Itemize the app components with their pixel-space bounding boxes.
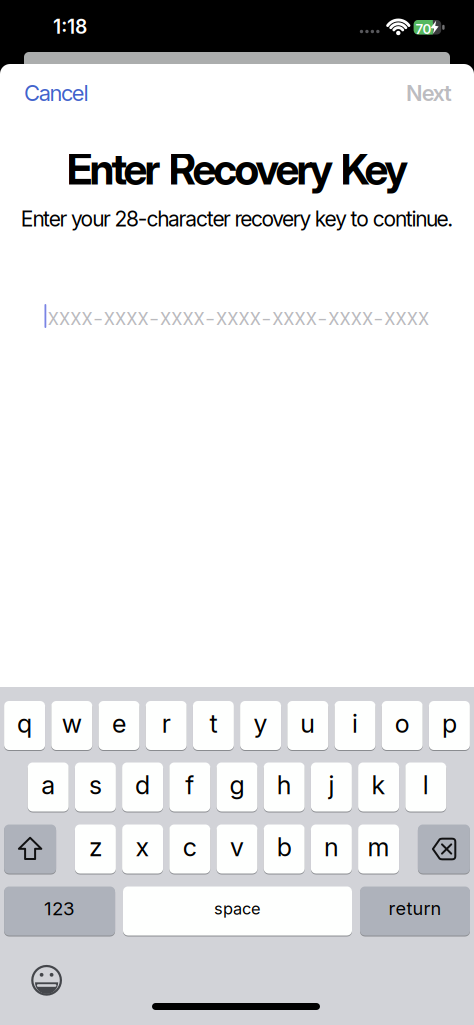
- button[interactable]: Emoji: [23, 956, 71, 1004]
- button[interactable]: Shift: [4, 824, 56, 874]
- button[interactable]: a: [28, 762, 69, 812]
- button[interactable]: r: [146, 700, 187, 750]
- staticText: XXXX-XXXX-XXXX-XXXX-XXXX-XXXX-XXXX: [47, 305, 429, 330]
- staticText: b: [277, 832, 292, 862]
- staticText: e: [112, 708, 126, 739]
- button[interactable]: e: [98, 700, 139, 750]
- staticText: return: [388, 897, 441, 919]
- button[interactable]: p: [429, 700, 470, 750]
- staticText: v: [230, 832, 244, 862]
- button[interactable]: j: [311, 762, 352, 812]
- staticText: Enter your 28-character recovery key to …: [21, 206, 453, 231]
- button[interactable]: m: [358, 824, 399, 874]
- staticText: space: [214, 899, 261, 918]
- button[interactable]: Next: [406, 80, 452, 106]
- staticText: w: [62, 708, 82, 739]
- staticText: Key: [340, 143, 407, 195]
- button[interactable]: l: [405, 762, 446, 812]
- staticText: q: [17, 708, 32, 739]
- staticText: o: [395, 708, 410, 739]
- staticText: r: [162, 708, 171, 739]
- staticText: g: [229, 770, 244, 800]
- staticText: d: [135, 770, 150, 800]
- staticText: Cancel: [24, 80, 88, 106]
- button[interactable]: i: [334, 700, 375, 750]
- staticText: c: [183, 832, 197, 862]
- staticText: h: [277, 770, 292, 800]
- button[interactable]: Delete: [418, 824, 470, 874]
- button[interactable]: o: [382, 700, 423, 750]
- staticText: s: [89, 770, 102, 800]
- button[interactable]: t: [193, 700, 234, 750]
- staticText: Enter: [66, 143, 160, 195]
- button[interactable]: z: [75, 824, 116, 874]
- button[interactable]: v: [216, 824, 257, 874]
- button[interactable]: x: [122, 824, 163, 874]
- button[interactable]: k: [358, 762, 399, 812]
- staticText: z: [89, 832, 102, 862]
- staticText: p: [442, 708, 457, 739]
- staticText: k: [372, 770, 386, 800]
- button[interactable]: w: [51, 700, 92, 750]
- staticText: u: [300, 708, 315, 739]
- button[interactable]: y: [240, 700, 281, 750]
- button[interactable]: space: [123, 886, 352, 936]
- button[interactable]: q: [4, 700, 45, 750]
- staticText: y: [254, 708, 268, 739]
- button[interactable]: f: [169, 762, 210, 812]
- staticText: Recovery: [168, 143, 332, 195]
- button[interactable]: h: [264, 762, 305, 812]
- button[interactable]: u: [287, 700, 328, 750]
- staticText: 1:18: [53, 15, 87, 38]
- button[interactable]: n: [311, 824, 352, 874]
- staticText: t: [209, 708, 217, 739]
- staticText: f: [185, 770, 194, 800]
- button[interactable]: d: [122, 762, 163, 812]
- staticText: 70: [415, 21, 431, 37]
- staticText: l: [423, 770, 429, 800]
- button[interactable]: 123: [4, 886, 115, 936]
- button[interactable]: b: [264, 824, 305, 874]
- button[interactable]: c: [169, 824, 210, 874]
- staticText: n: [324, 832, 339, 862]
- button[interactable]: s: [75, 762, 116, 812]
- staticText: j: [328, 770, 334, 800]
- staticText: x: [136, 832, 150, 862]
- staticText: i: [352, 708, 358, 739]
- button[interactable]: return: [360, 886, 470, 936]
- staticText: a: [41, 770, 55, 800]
- staticText: m: [368, 832, 390, 862]
- staticText: 123: [44, 897, 75, 920]
- staticText: Next: [406, 80, 452, 106]
- button[interactable]: Cancel: [24, 80, 88, 106]
- button[interactable]: g: [216, 762, 257, 812]
